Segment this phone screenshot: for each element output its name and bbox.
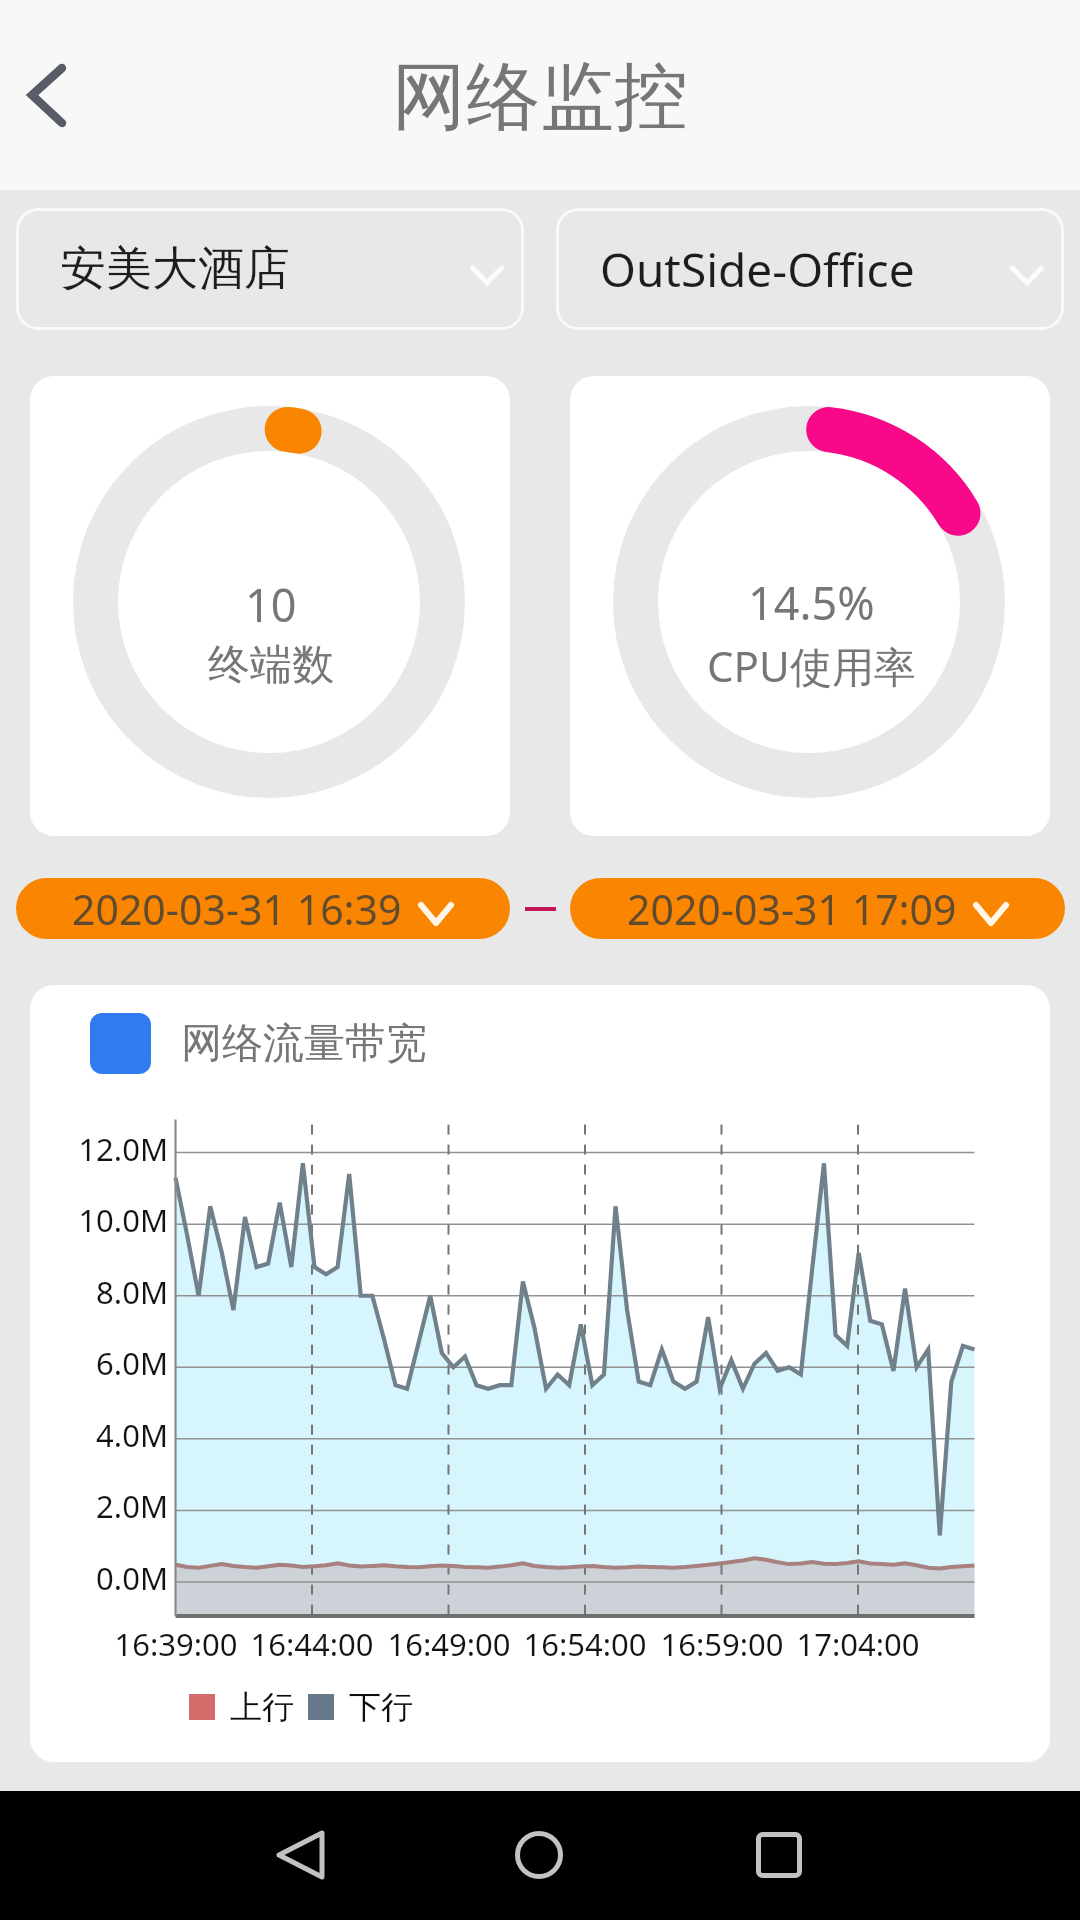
staticText: 安美大酒店 xyxy=(60,240,290,298)
staticText: 10.0M xyxy=(44,1199,168,1241)
staticText: 2020-03-31 17:09 xyxy=(627,881,957,937)
staticText: 2020-03-31 16:39 xyxy=(72,881,402,937)
staticText: CPU使用率 xyxy=(707,637,916,694)
button[interactable]: 网络流量带宽 xyxy=(90,1013,427,1074)
staticText: 8.0M xyxy=(44,1271,168,1313)
staticText: 12.0M xyxy=(44,1128,168,1170)
staticText: 17:04:00 xyxy=(758,1623,958,1665)
staticText: 6.0M xyxy=(44,1342,168,1384)
staticText: 终端数 xyxy=(208,639,334,692)
button[interactable]: 安美大酒店 xyxy=(16,208,524,330)
staticText: 网络流量带宽 xyxy=(181,1018,427,1070)
button[interactable]: 14.5% xyxy=(570,376,1050,836)
button[interactable]: Back xyxy=(2,51,92,141)
button[interactable]: Recents xyxy=(724,1800,834,1910)
staticText: 16:59:00 xyxy=(622,1623,822,1665)
staticText: 10 xyxy=(245,574,297,635)
button[interactable]: 10 xyxy=(30,376,510,836)
button[interactable]: Home xyxy=(484,1800,594,1910)
staticText: 2.0M xyxy=(44,1485,168,1527)
staticText: 上行 xyxy=(230,1687,294,1727)
button[interactable]: 2020-03-31 16:39 xyxy=(16,878,510,939)
button[interactable]: Back xyxy=(245,1800,355,1910)
staticText: 4.0M xyxy=(44,1414,168,1456)
staticText: 网络监控 xyxy=(392,51,688,144)
staticText: OutSide-Office xyxy=(600,238,915,301)
staticText: 下行 xyxy=(349,1687,413,1727)
staticText: 16:39:00 xyxy=(76,1623,276,1665)
staticText: 16:54:00 xyxy=(485,1623,685,1665)
staticText: 16:44:00 xyxy=(212,1623,412,1665)
staticText: 16:49:00 xyxy=(349,1623,549,1665)
button[interactable]: 2020-03-31 17:09 xyxy=(570,878,1065,939)
button[interactable]: OutSide-Office xyxy=(556,208,1064,330)
button[interactable]: 上行 xyxy=(189,1687,413,1727)
staticText: 14.5% xyxy=(748,572,875,633)
staticText: 0.0M xyxy=(44,1557,168,1599)
